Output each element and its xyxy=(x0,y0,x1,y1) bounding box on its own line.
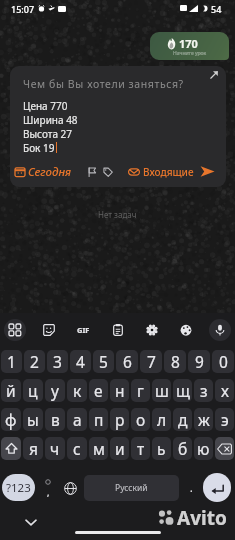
staticText: щ xyxy=(176,380,190,401)
button[interactable]: Settings xyxy=(141,319,163,341)
staticText: и xyxy=(115,438,125,459)
button[interactable]: к xyxy=(67,379,87,402)
staticText: ы xyxy=(27,409,39,430)
staticText: л xyxy=(157,409,167,430)
button[interactable]: 8 xyxy=(164,350,186,373)
button[interactable]: Labels xyxy=(102,166,114,178)
staticText: , xyxy=(47,486,50,498)
button[interactable]: Shift xyxy=(1,437,21,460)
staticText: б xyxy=(178,438,188,459)
staticText: р xyxy=(115,409,125,430)
button[interactable]: ч xyxy=(45,437,65,460)
button[interactable]: Hide keyboard xyxy=(22,513,40,531)
button[interactable]: ю xyxy=(194,437,213,460)
button[interactable]: ф xyxy=(1,408,21,431)
staticText: 6 xyxy=(123,351,132,372)
staticText: в xyxy=(51,409,60,430)
button[interactable]: Voice input xyxy=(209,319,231,341)
button[interactable]: п xyxy=(89,408,108,431)
button[interactable]: Clipboard xyxy=(107,319,129,341)
staticText: о xyxy=(136,409,146,430)
staticText: д xyxy=(178,409,188,430)
button[interactable]: ?123 xyxy=(2,474,35,501)
staticText: ш xyxy=(155,380,169,401)
button[interactable]: 0 xyxy=(212,350,234,373)
button[interactable]: 1 xyxy=(1,350,22,373)
button[interactable]: 4 xyxy=(70,350,91,373)
button[interactable]: GIF xyxy=(72,319,94,341)
staticText: е xyxy=(94,380,103,401)
staticText: м xyxy=(93,438,105,459)
staticText: ф xyxy=(5,409,17,430)
button[interactable]: . xyxy=(181,472,201,504)
button[interactable]: н xyxy=(110,379,129,402)
button[interactable]: ш xyxy=(152,379,171,402)
button[interactable]: ж xyxy=(194,408,213,431)
button[interactable]: 6 xyxy=(116,350,138,373)
button[interactable]: 7 xyxy=(140,350,162,373)
button[interactable]: м xyxy=(89,437,108,460)
staticText: я xyxy=(29,438,38,459)
button[interactable]: Themes xyxy=(175,319,197,341)
button[interactable]: Русский xyxy=(84,475,179,501)
staticText: 7 xyxy=(147,351,156,372)
staticText: к xyxy=(73,380,82,401)
button[interactable]: Входящие xyxy=(128,165,194,179)
button[interactable]: Stickers xyxy=(38,319,60,341)
button[interactable]: 2 xyxy=(24,350,45,373)
staticText: ю xyxy=(197,438,210,459)
button[interactable]: ц xyxy=(23,379,43,402)
button[interactable]: д xyxy=(173,408,192,431)
button[interactable]: р xyxy=(110,408,129,431)
button[interactable]: , xyxy=(37,472,59,504)
button[interactable]: 9 xyxy=(188,350,210,373)
button[interactable]: с xyxy=(67,437,87,460)
button[interactable]: Change language xyxy=(59,472,82,504)
staticText: 0 xyxy=(219,351,228,372)
button[interactable]: ы xyxy=(23,408,43,431)
button[interactable]: г xyxy=(131,379,150,402)
button[interactable]: о xyxy=(131,408,150,431)
button[interactable]: в xyxy=(45,408,65,431)
staticText: ж xyxy=(198,409,210,430)
button[interactable]: л xyxy=(152,408,171,431)
button[interactable]: Apps xyxy=(4,319,26,341)
staticText: й xyxy=(6,380,16,401)
button[interactable]: з xyxy=(194,379,213,402)
button[interactable]: э xyxy=(215,408,234,431)
button[interactable]: а xyxy=(67,408,87,431)
button[interactable]: 170 xyxy=(150,32,229,60)
button[interactable]: т xyxy=(131,437,150,460)
staticText: 5 xyxy=(99,351,108,372)
button[interactable]: Сегодня xyxy=(15,164,72,180)
button[interactable]: Send xyxy=(200,165,215,178)
staticText: 2 xyxy=(30,351,39,372)
staticText: 9 xyxy=(195,351,204,372)
button[interactable]: я xyxy=(23,437,43,460)
button[interactable]: Expand xyxy=(207,68,221,82)
button[interactable]: ь xyxy=(152,437,171,460)
button[interactable]: щ xyxy=(173,379,192,402)
button[interactable]: 5 xyxy=(93,350,114,373)
button[interactable]: б xyxy=(173,437,192,460)
button[interactable]: е xyxy=(89,379,108,402)
staticText: 1 xyxy=(7,351,16,372)
staticText: г xyxy=(137,380,144,401)
button[interactable]: Backspace xyxy=(215,437,234,460)
button[interactable]: й xyxy=(1,379,21,402)
staticText: т xyxy=(137,438,145,459)
button[interactable]: х xyxy=(215,379,234,402)
staticText: Чем бы Вы хотели заняться? xyxy=(23,77,184,91)
staticText: ц xyxy=(28,380,38,401)
staticText: э xyxy=(221,409,229,430)
staticText: Входящие xyxy=(143,165,194,179)
button[interactable]: и xyxy=(110,437,129,460)
button[interactable]: Priority xyxy=(86,166,98,178)
staticText: 170 xyxy=(179,36,198,51)
button[interactable]: Enter xyxy=(203,473,231,502)
button[interactable]: 3 xyxy=(47,350,68,373)
staticText: 4 xyxy=(76,351,85,372)
button[interactable]: у xyxy=(45,379,65,402)
staticText: 15:07 xyxy=(11,3,35,15)
staticText: Цена 770 Ширина 48 Высота 27 xyxy=(23,99,78,141)
